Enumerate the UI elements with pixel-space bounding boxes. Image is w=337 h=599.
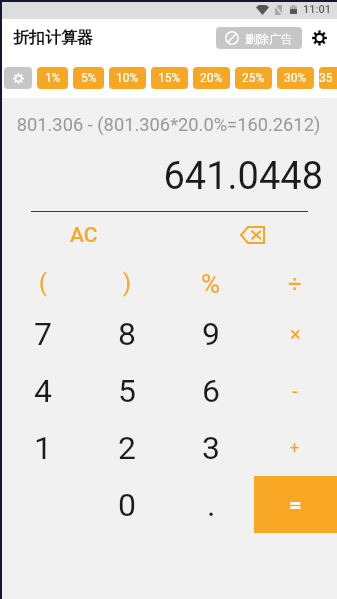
button[interactable]: Backspace (168, 217, 337, 253)
staticText: 11:01 (303, 3, 331, 16)
staticText: - (292, 379, 298, 402)
button[interactable]: 8 (85, 305, 169, 362)
button[interactable]: ÷ (253, 248, 337, 305)
staticText: 7 (34, 315, 52, 353)
staticText: 0 (118, 486, 136, 524)
staticText: 801.306 - (801.306*20.0%=160.2612) (12, 114, 325, 135)
staticText: 5 (118, 372, 136, 410)
button[interactable]: 1% (37, 67, 68, 89)
button[interactable]: 3 (169, 419, 253, 476)
button[interactable]: . (169, 476, 253, 533)
staticText: 3 (202, 429, 220, 467)
staticText: ( (39, 270, 47, 297)
staticText: 2 (118, 429, 136, 467)
staticText: 9 (202, 315, 220, 353)
button[interactable]: AC (0, 217, 168, 253)
button[interactable]: - (253, 362, 337, 419)
button[interactable]: = (254, 476, 337, 533)
staticText: AC (70, 223, 98, 248)
button[interactable]: 9 (169, 305, 253, 362)
staticText: . (207, 486, 216, 524)
button[interactable]: ( (0, 248, 85, 305)
staticText: ÷ (288, 270, 302, 298)
staticText: 35% (319, 71, 337, 85)
staticText: 6 (202, 372, 220, 410)
button[interactable]: 5% (73, 67, 104, 89)
staticText: 1 (34, 429, 52, 467)
staticText: 20% (200, 71, 223, 85)
staticText: 4 (34, 372, 52, 410)
button[interactable]: Settings (308, 27, 330, 49)
staticText: × (290, 322, 301, 345)
button[interactable]: % (169, 248, 253, 305)
staticText: 1% (45, 71, 61, 85)
staticText: 641.0448 (0, 154, 323, 199)
button[interactable]: 20% (193, 67, 230, 89)
button[interactable]: 7 (0, 305, 85, 362)
button[interactable]: ) (85, 248, 169, 305)
button[interactable]: 25% (235, 67, 272, 89)
staticText: 5% (81, 71, 97, 85)
button[interactable]: 1 (0, 419, 85, 476)
staticText: + (290, 438, 300, 457)
staticText: ) (123, 270, 132, 297)
button[interactable]: 15% (151, 67, 188, 89)
staticText: 8 (118, 315, 136, 353)
staticText: 25% (242, 71, 265, 85)
button[interactable]: 0 (85, 476, 169, 533)
button[interactable]: 2 (85, 419, 169, 476)
button[interactable]: 10% (109, 67, 146, 89)
button[interactable]: 35% (319, 67, 337, 89)
staticText: 15% (158, 71, 181, 85)
staticText: = (289, 492, 302, 518)
button[interactable]: 30% (277, 67, 314, 89)
staticText: 删除广告 (245, 31, 293, 46)
button[interactable]: Percent settings (4, 67, 32, 89)
button[interactable]: 删除广告 (216, 27, 302, 49)
button[interactable]: 4 (0, 362, 85, 419)
staticText: 折扣计算器 (13, 28, 93, 48)
staticText: 10% (116, 71, 139, 85)
staticText: 30% (284, 71, 307, 85)
button[interactable]: 5 (85, 362, 169, 419)
button[interactable]: 6 (169, 362, 253, 419)
staticText: % (201, 269, 221, 299)
button[interactable]: × (253, 305, 337, 362)
button[interactable]: + (253, 419, 337, 476)
